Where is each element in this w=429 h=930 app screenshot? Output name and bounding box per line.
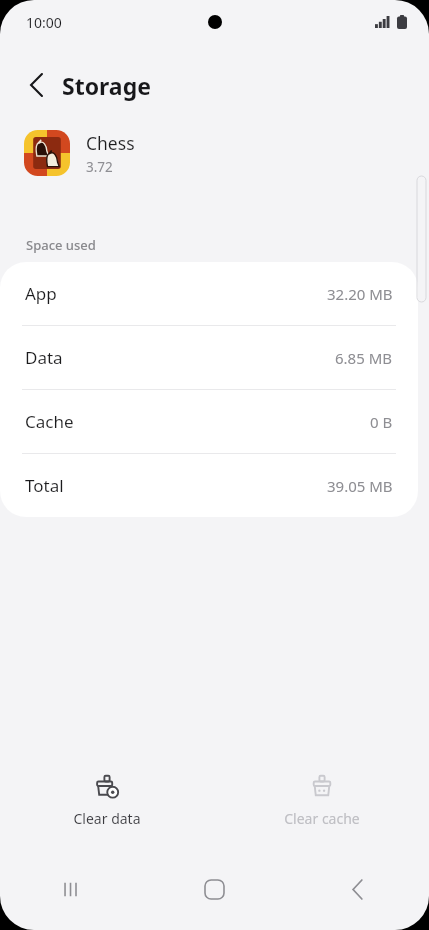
staticText: 32.20 MB [327,284,393,304]
staticText: Total [25,474,64,497]
staticText: Cache [25,410,74,433]
button[interactable]: Recents [0,866,143,912]
staticText: Clear cache [284,809,360,828]
staticText: 0 B [370,412,393,432]
staticText: 39.05 MB [327,476,393,496]
staticText: 10:00 [26,13,62,32]
staticText: 6.85 MB [335,348,393,368]
staticText: Clear data [73,809,141,828]
button[interactable]: Cache [0,390,418,453]
button[interactable]: Clear data [47,768,167,834]
button[interactable]: Back [14,63,58,107]
button[interactable]: App [0,262,418,325]
staticText: 3.72 [86,158,113,176]
button[interactable]: Data [0,326,418,389]
button[interactable]: Back [286,866,429,912]
button[interactable]: Clear cache [258,768,386,834]
button[interactable]: Total [0,454,418,517]
staticText: App [25,282,57,305]
button[interactable]: Home [143,866,286,912]
staticText: Data [25,346,63,369]
staticText: Chess [86,131,135,155]
staticText: Space used [26,236,96,254]
staticText: Storage [62,70,151,101]
